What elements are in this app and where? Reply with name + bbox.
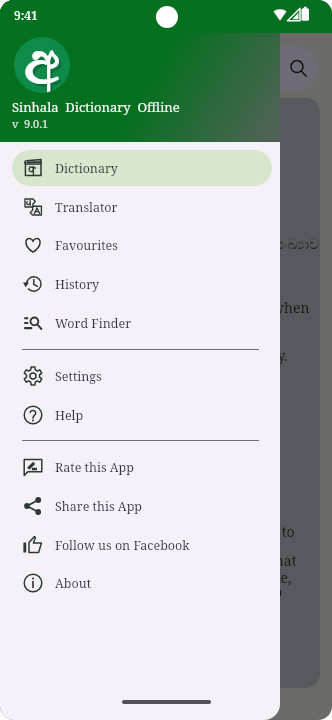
staticText: Sinhala Dictionary Offline [12, 98, 180, 116]
staticText: Rate this App [55, 459, 134, 476]
staticText: අ [24, 37, 60, 93]
button[interactable]: Help [12, 397, 272, 433]
staticText: ity. [268, 346, 288, 365]
button[interactable]: Rate this App [12, 449, 272, 485]
button[interactable]: Word Finder [12, 305, 272, 341]
button[interactable]: Dictionary [12, 150, 272, 186]
staticText: that [270, 551, 297, 570]
button[interactable]: Favourites [12, 227, 272, 263]
button[interactable]: Follow us on Facebook [12, 527, 272, 563]
button[interactable]: Share this App [12, 488, 272, 524]
button[interactable]: Translator [12, 189, 272, 225]
staticText: සංඛ්‍යාව [274, 238, 320, 252]
staticText: v 9.0.1 [12, 116, 49, 131]
staticText: Follow us on Facebook [55, 537, 190, 554]
staticText: o [274, 582, 283, 601]
staticText: Share this App [55, 498, 142, 515]
staticText: Word Finder [55, 315, 132, 332]
button[interactable]: Settings [12, 358, 272, 394]
staticText: ; to [274, 522, 295, 541]
button[interactable]: History [12, 266, 272, 302]
button[interactable]: Search [200, 46, 319, 91]
staticText: Help [55, 407, 84, 424]
staticText: 9:41 [14, 7, 38, 23]
staticText: History [55, 276, 100, 293]
staticText: Settings [55, 368, 102, 385]
staticText: when [272, 298, 310, 317]
staticText: About [55, 575, 92, 592]
staticText: Favourites [55, 237, 118, 254]
button[interactable]: About [12, 565, 272, 601]
staticText: අ [27, 40, 63, 93]
staticText: Dictionary [55, 160, 118, 177]
staticText: Translator [55, 199, 118, 216]
staticText: de, [272, 568, 292, 587]
